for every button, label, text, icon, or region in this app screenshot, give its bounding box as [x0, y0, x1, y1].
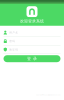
staticText: 密码	[9, 39, 15, 43]
staticText: 用户名	[9, 31, 18, 34]
button[interactable]: 登 录	[3, 55, 60, 62]
staticText: 登 录	[27, 56, 37, 61]
staticText: 验证码	[9, 48, 18, 51]
staticText: 欢迎登录系统	[20, 19, 44, 23]
